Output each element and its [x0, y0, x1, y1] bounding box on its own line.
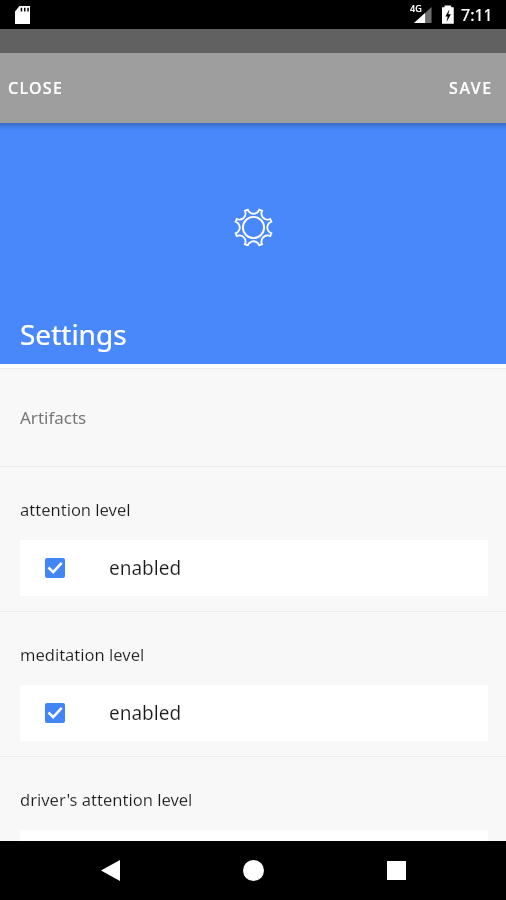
- button[interactable]: enabled: [20, 830, 488, 886]
- staticText: attention level: [20, 498, 131, 520]
- button[interactable]: Recent apps: [360, 841, 432, 900]
- staticText: driver's attention level: [20, 788, 193, 810]
- staticText: 4G: [410, 2, 422, 14]
- button[interactable]: SAVE: [434, 55, 506, 121]
- staticText: CLOSE: [8, 77, 64, 99]
- other: Mobile signal: [409, 7, 433, 23]
- staticText: enabled: [109, 845, 182, 871]
- button[interactable]: Back: [74, 841, 146, 900]
- staticText: meditation level: [20, 643, 145, 665]
- other: Battery charging: [442, 4, 454, 23]
- staticText: Settings: [20, 315, 127, 353]
- staticText: 7:11: [461, 4, 493, 26]
- button[interactable]: enabled: [20, 685, 488, 741]
- button[interactable]: Home: [217, 841, 289, 900]
- button[interactable]: enabled: [20, 540, 488, 596]
- staticText: SAVE: [449, 77, 493, 99]
- button[interactable]: CLOSE: [0, 55, 74, 121]
- staticText: Artifacts: [20, 406, 87, 429]
- staticText: enabled: [109, 700, 182, 726]
- staticText: enabled: [109, 555, 182, 581]
- other: SD card: [15, 6, 30, 24]
